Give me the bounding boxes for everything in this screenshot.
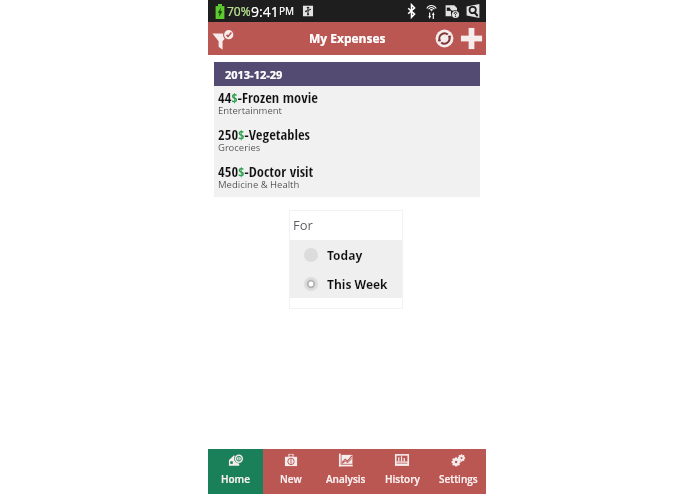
button[interactable]: 44$-Frozen movie (214, 86, 480, 123)
button[interactable]: Home (208, 449, 263, 494)
staticText: 250$-Vegetables (218, 125, 311, 145)
staticText: For (293, 216, 313, 234)
staticText: History (385, 472, 420, 486)
staticText: Medicine & Health (218, 178, 300, 191)
staticText: Today (327, 247, 363, 263)
staticText: 450$-Doctor visit (218, 162, 314, 182)
button[interactable]: This Week (289, 269, 403, 298)
staticText: 9:41 (251, 2, 279, 21)
staticText: 70% (227, 3, 251, 19)
button[interactable]: Today (289, 240, 403, 269)
button[interactable]: 450$-Doctor visit (214, 160, 480, 197)
button[interactable]: Filter (208, 24, 238, 54)
staticText: 44$-Frozen movie (218, 88, 318, 108)
button[interactable]: History (374, 449, 430, 494)
staticText: Analysis (326, 472, 366, 486)
button[interactable]: New (263, 449, 318, 494)
button[interactable]: Settings (430, 449, 486, 494)
staticText: Entertainment (218, 104, 282, 117)
staticText: Groceries (218, 141, 261, 154)
button[interactable]: Refresh (431, 25, 458, 52)
staticText: 2013-12-29 (225, 67, 283, 82)
button[interactable]: 250$-Vegetables (214, 123, 480, 160)
staticText: This Week (327, 276, 388, 292)
staticText: Home (221, 472, 250, 486)
button[interactable]: Add expense (458, 25, 485, 52)
staticText: My Expenses (309, 30, 386, 46)
staticText: New (280, 472, 302, 486)
staticText: PM (279, 4, 295, 18)
button[interactable]: Analysis (318, 449, 374, 494)
staticText: Settings (439, 472, 478, 486)
